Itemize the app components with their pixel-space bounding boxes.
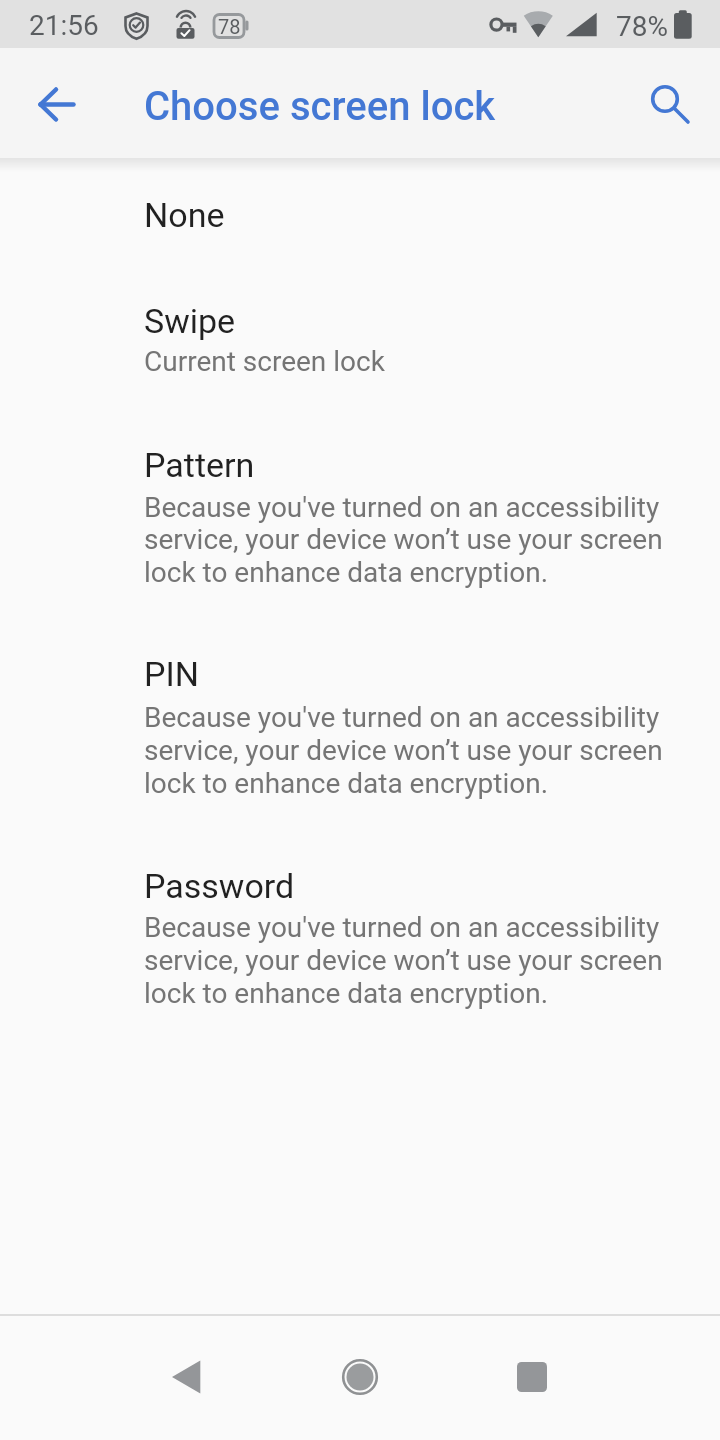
staticText: 78 bbox=[218, 15, 241, 38]
staticText: None bbox=[144, 195, 225, 235]
button[interactable] bbox=[637, 71, 693, 127]
button[interactable] bbox=[327, 1344, 393, 1410]
staticText: PIN bbox=[144, 654, 199, 694]
button[interactable]: None bbox=[0, 158, 720, 268]
staticText: Current screen lock bbox=[144, 345, 385, 378]
staticText: lock to enhance data encryption. bbox=[144, 977, 549, 1010]
staticText: 21:56 bbox=[29, 9, 99, 42]
staticText: Because you've turned on an accessibilit… bbox=[144, 491, 660, 524]
staticText: service, your device won’t use your scre… bbox=[144, 523, 663, 556]
staticText: lock to enhance data encryption. bbox=[144, 556, 549, 589]
staticText: Password bbox=[144, 866, 295, 906]
button[interactable]: Password bbox=[0, 830, 720, 1040]
staticText: Because you've turned on an accessibilit… bbox=[144, 911, 660, 944]
button[interactable] bbox=[29, 76, 85, 132]
staticText: Choose screen lock bbox=[144, 83, 496, 130]
button[interactable]: Swipe bbox=[0, 268, 720, 411]
button[interactable] bbox=[499, 1344, 565, 1410]
button[interactable]: PIN bbox=[0, 620, 720, 830]
staticText: service, your device won’t use your scre… bbox=[144, 734, 663, 767]
staticText: Swipe bbox=[144, 301, 236, 341]
button[interactable]: Pattern bbox=[0, 411, 720, 620]
staticText: 78% bbox=[616, 10, 668, 43]
staticText: Because you've turned on an accessibilit… bbox=[144, 701, 660, 734]
staticText: lock to enhance data encryption. bbox=[144, 767, 549, 800]
button[interactable] bbox=[153, 1344, 219, 1410]
staticText: Pattern bbox=[144, 445, 255, 485]
staticText: service, your device won’t use your scre… bbox=[144, 944, 663, 977]
